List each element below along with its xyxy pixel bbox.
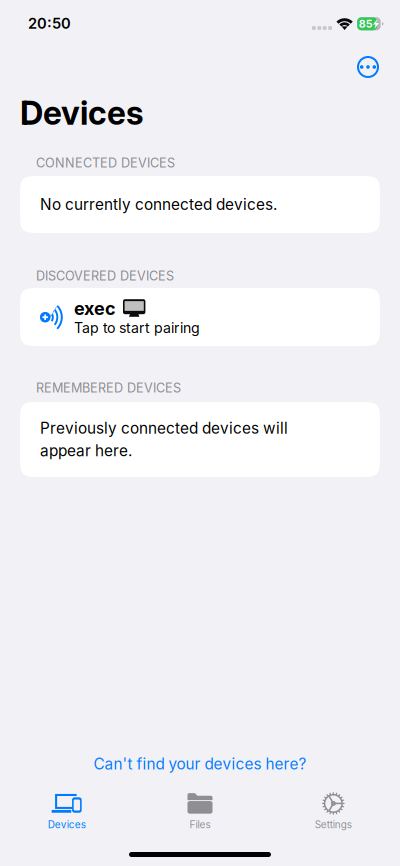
button[interactable]: Can't find your devices here? <box>0 751 400 777</box>
staticText: Devices <box>48 818 86 831</box>
staticText: Devices <box>20 93 144 132</box>
staticText: Previously connected devices will <box>40 419 288 437</box>
staticText: CONNECTED DEVICES <box>36 155 175 171</box>
staticText: DISCOVERED DEVICES <box>36 268 174 284</box>
button[interactable]: Settings <box>267 789 400 833</box>
button[interactable]: More options <box>346 48 390 84</box>
staticText: Tap to start pairing <box>74 319 200 336</box>
staticText: No currently connected devices. <box>40 195 277 214</box>
staticText: exec <box>74 298 116 319</box>
button[interactable]: Files <box>133 789 267 833</box>
staticText: appear here. <box>40 441 132 460</box>
button[interactable]: exec <box>0 288 400 346</box>
staticText: Files <box>189 818 210 831</box>
staticText: Settings <box>315 818 352 831</box>
staticText: 20:50 <box>28 15 71 32</box>
staticText: 85 <box>359 17 373 30</box>
staticText: REMEMBERED DEVICES <box>36 380 181 396</box>
button[interactable]: Devices <box>0 789 133 833</box>
staticText: Can't find your devices here? <box>93 755 306 773</box>
